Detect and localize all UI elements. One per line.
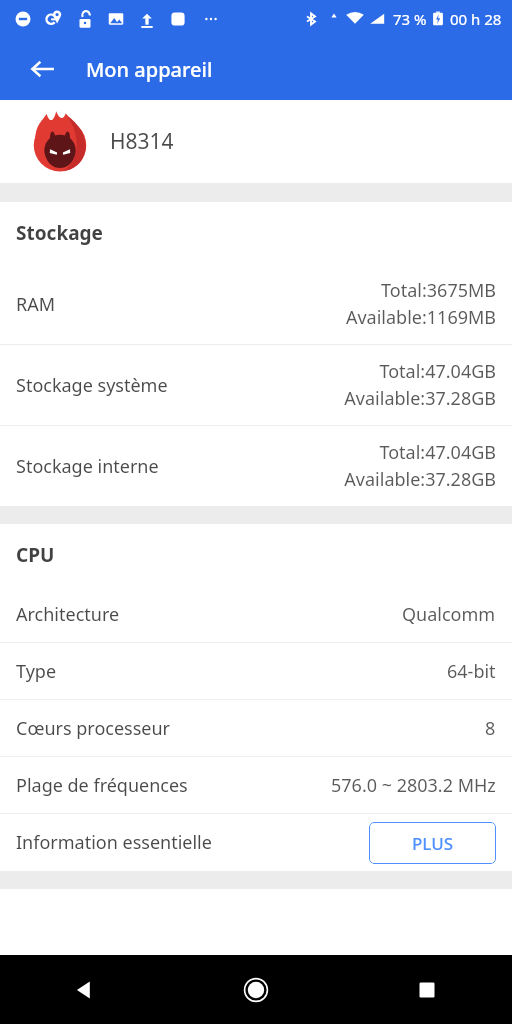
staticText: Mon appareil xyxy=(86,56,213,83)
staticText: Qualcomm xyxy=(402,602,496,627)
staticText: Information essentielle xyxy=(16,830,212,855)
button[interactable]: Stockage interne xyxy=(0,426,512,506)
staticText: Total:3675MB xyxy=(381,278,496,303)
button[interactable]: Plage de fréquences xyxy=(0,757,512,813)
staticText: Cœurs processeur xyxy=(16,716,171,741)
staticText: 00 h 28 xyxy=(450,9,502,29)
staticText: Stockage interne xyxy=(16,454,159,479)
button[interactable]: RAM xyxy=(0,264,512,344)
staticText: Available:37.28GB xyxy=(344,386,496,411)
staticText: Stockage système xyxy=(16,373,168,398)
staticText: 73 % xyxy=(393,9,427,29)
button[interactable]: Architecture xyxy=(0,586,512,642)
staticText: 576.0 ~ 2803.2 MHz xyxy=(331,773,496,798)
button[interactable]: Type xyxy=(0,643,512,699)
button[interactable]: Back xyxy=(0,955,170,1024)
staticText: H8314 xyxy=(110,127,174,156)
button[interactable]: H8314 xyxy=(0,100,512,183)
staticText: Total:47.04GB xyxy=(379,440,496,465)
staticText: PLUS xyxy=(412,832,454,855)
staticText: RAM xyxy=(16,292,56,317)
staticText: Stockage xyxy=(16,220,103,246)
button[interactable]: Recent apps xyxy=(341,955,512,1024)
staticText: Architecture xyxy=(16,602,120,627)
staticText: Type xyxy=(16,659,57,684)
button[interactable]: Back xyxy=(22,48,64,90)
staticText: Total:47.04GB xyxy=(379,359,496,384)
staticText: CPU xyxy=(16,542,55,568)
staticText: 64-bit xyxy=(447,659,496,684)
staticText: Available:1169MB xyxy=(345,305,496,330)
button[interactable]: Home xyxy=(170,955,341,1024)
button[interactable]: PLUS xyxy=(369,822,496,864)
button[interactable]: Stockage système xyxy=(0,345,512,425)
staticText: 8 xyxy=(485,716,496,741)
staticText: Available:37.28GB xyxy=(344,467,496,492)
staticText: Plage de fréquences xyxy=(16,773,188,798)
button[interactable]: Cœurs processeur xyxy=(0,700,512,756)
